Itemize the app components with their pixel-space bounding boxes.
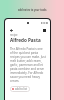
- staticText: Alfredo Pasta: [10, 37, 41, 43]
- staticText: add to list: [15, 87, 28, 91]
- staticText: add notes to your tasks: [18, 8, 47, 11]
- button[interactable]: More options: [41, 27, 47, 33]
- staticText: recipe: [10, 33, 18, 37]
- staticText: The Alfredo Pasta is one of the quickest…: [10, 47, 46, 83]
- button[interactable]: Back: [8, 27, 14, 33]
- button[interactable]: add to list: [10, 86, 30, 92]
